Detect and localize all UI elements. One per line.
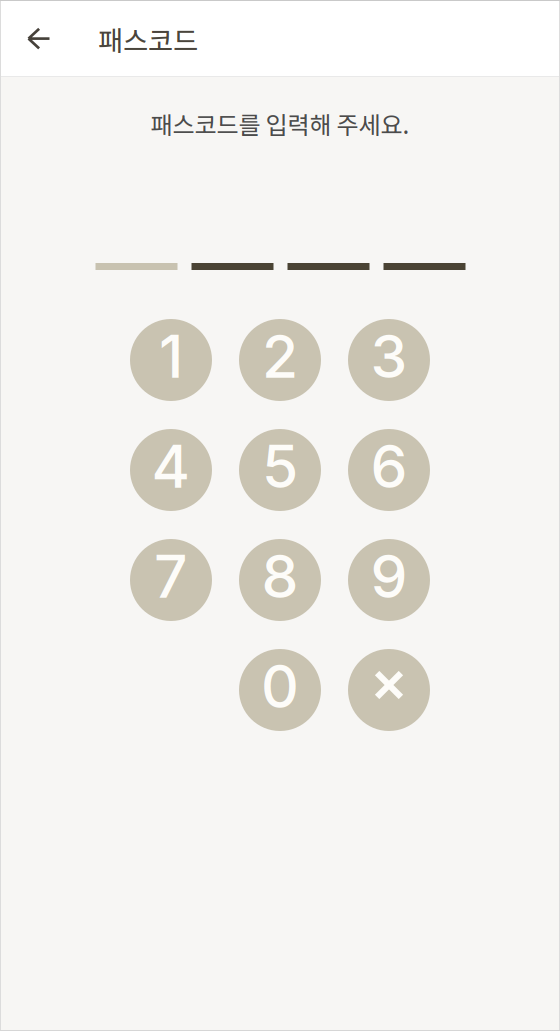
staticText: 2 — [262, 321, 298, 392]
button[interactable]: 0 — [239, 649, 321, 731]
staticText: 1 — [159, 321, 183, 392]
button[interactable]: 8 — [239, 539, 321, 621]
staticText: 8 — [261, 541, 298, 612]
staticText: 5 — [262, 431, 298, 502]
staticText: 9 — [370, 541, 407, 612]
button[interactable]: 5 — [239, 429, 321, 511]
button[interactable]: 4 — [130, 429, 212, 511]
button[interactable]: Delete — [348, 649, 430, 731]
button[interactable]: 7 — [130, 539, 212, 621]
staticText: 패스코드 — [98, 19, 198, 59]
staticText: 6 — [370, 431, 407, 502]
button[interactable]: 1 — [130, 319, 212, 401]
button[interactable]: 9 — [348, 539, 430, 621]
button[interactable]: Back — [15, 15, 63, 63]
staticText: 0 — [261, 651, 299, 722]
button[interactable]: 6 — [348, 429, 430, 511]
button[interactable]: 2 — [239, 319, 321, 401]
staticText: 3 — [370, 321, 407, 392]
staticText: 4 — [151, 431, 190, 502]
staticText: 7 — [154, 541, 188, 612]
staticText: 패스코드를 입력해 주세요. — [150, 106, 409, 141]
button[interactable]: 3 — [348, 319, 430, 401]
